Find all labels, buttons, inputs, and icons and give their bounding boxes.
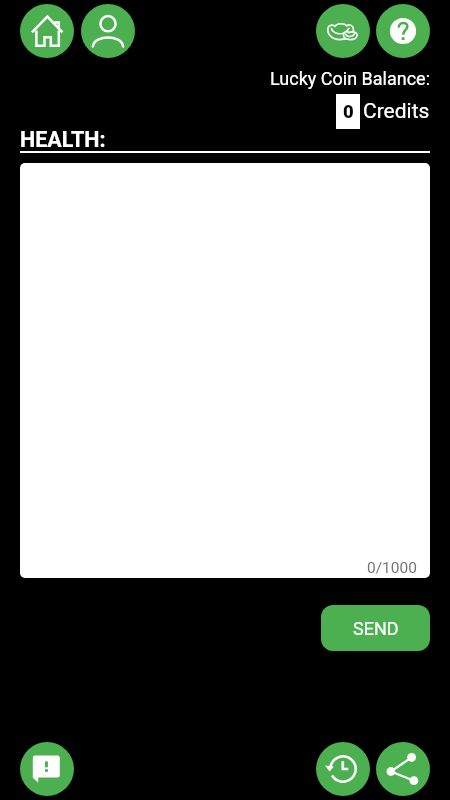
button[interactable]: Profile — [81, 4, 135, 58]
button[interactable]: Message input field — [20, 163, 430, 578]
button[interactable]: History — [316, 742, 370, 796]
button[interactable]: Feedback — [20, 742, 74, 796]
button[interactable]: Coins — [316, 4, 370, 58]
staticText: Credits — [363, 99, 430, 124]
staticText: 0/1000 — [367, 559, 417, 577]
staticText: SEND — [353, 618, 399, 639]
button[interactable]: Help — [376, 4, 430, 58]
button[interactable]: SEND — [321, 605, 430, 651]
button[interactable]: Share — [376, 742, 430, 796]
staticText: Lucky Coin Balance: — [0, 68, 430, 89]
staticText: 0 — [343, 101, 354, 123]
button[interactable]: Home — [20, 4, 74, 58]
staticText: HEALTH: — [20, 127, 106, 152]
